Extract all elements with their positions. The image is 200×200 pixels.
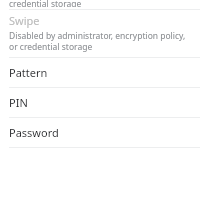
staticText: Swipe: [9, 13, 40, 28]
button[interactable]: PIN: [0, 88, 200, 117]
staticText: credential storage: [9, 0, 82, 7]
staticText: PIN: [9, 95, 28, 110]
button[interactable]: credential storage: [0, 0, 200, 9]
staticText: Password: [9, 125, 59, 140]
staticText: Disabled by administrator, encryption po…: [9, 30, 192, 52]
button[interactable]: Pattern: [0, 58, 200, 87]
button[interactable]: Password: [0, 118, 200, 147]
button[interactable]: Swipe: [0, 10, 200, 57]
staticText: Pattern: [9, 65, 48, 80]
